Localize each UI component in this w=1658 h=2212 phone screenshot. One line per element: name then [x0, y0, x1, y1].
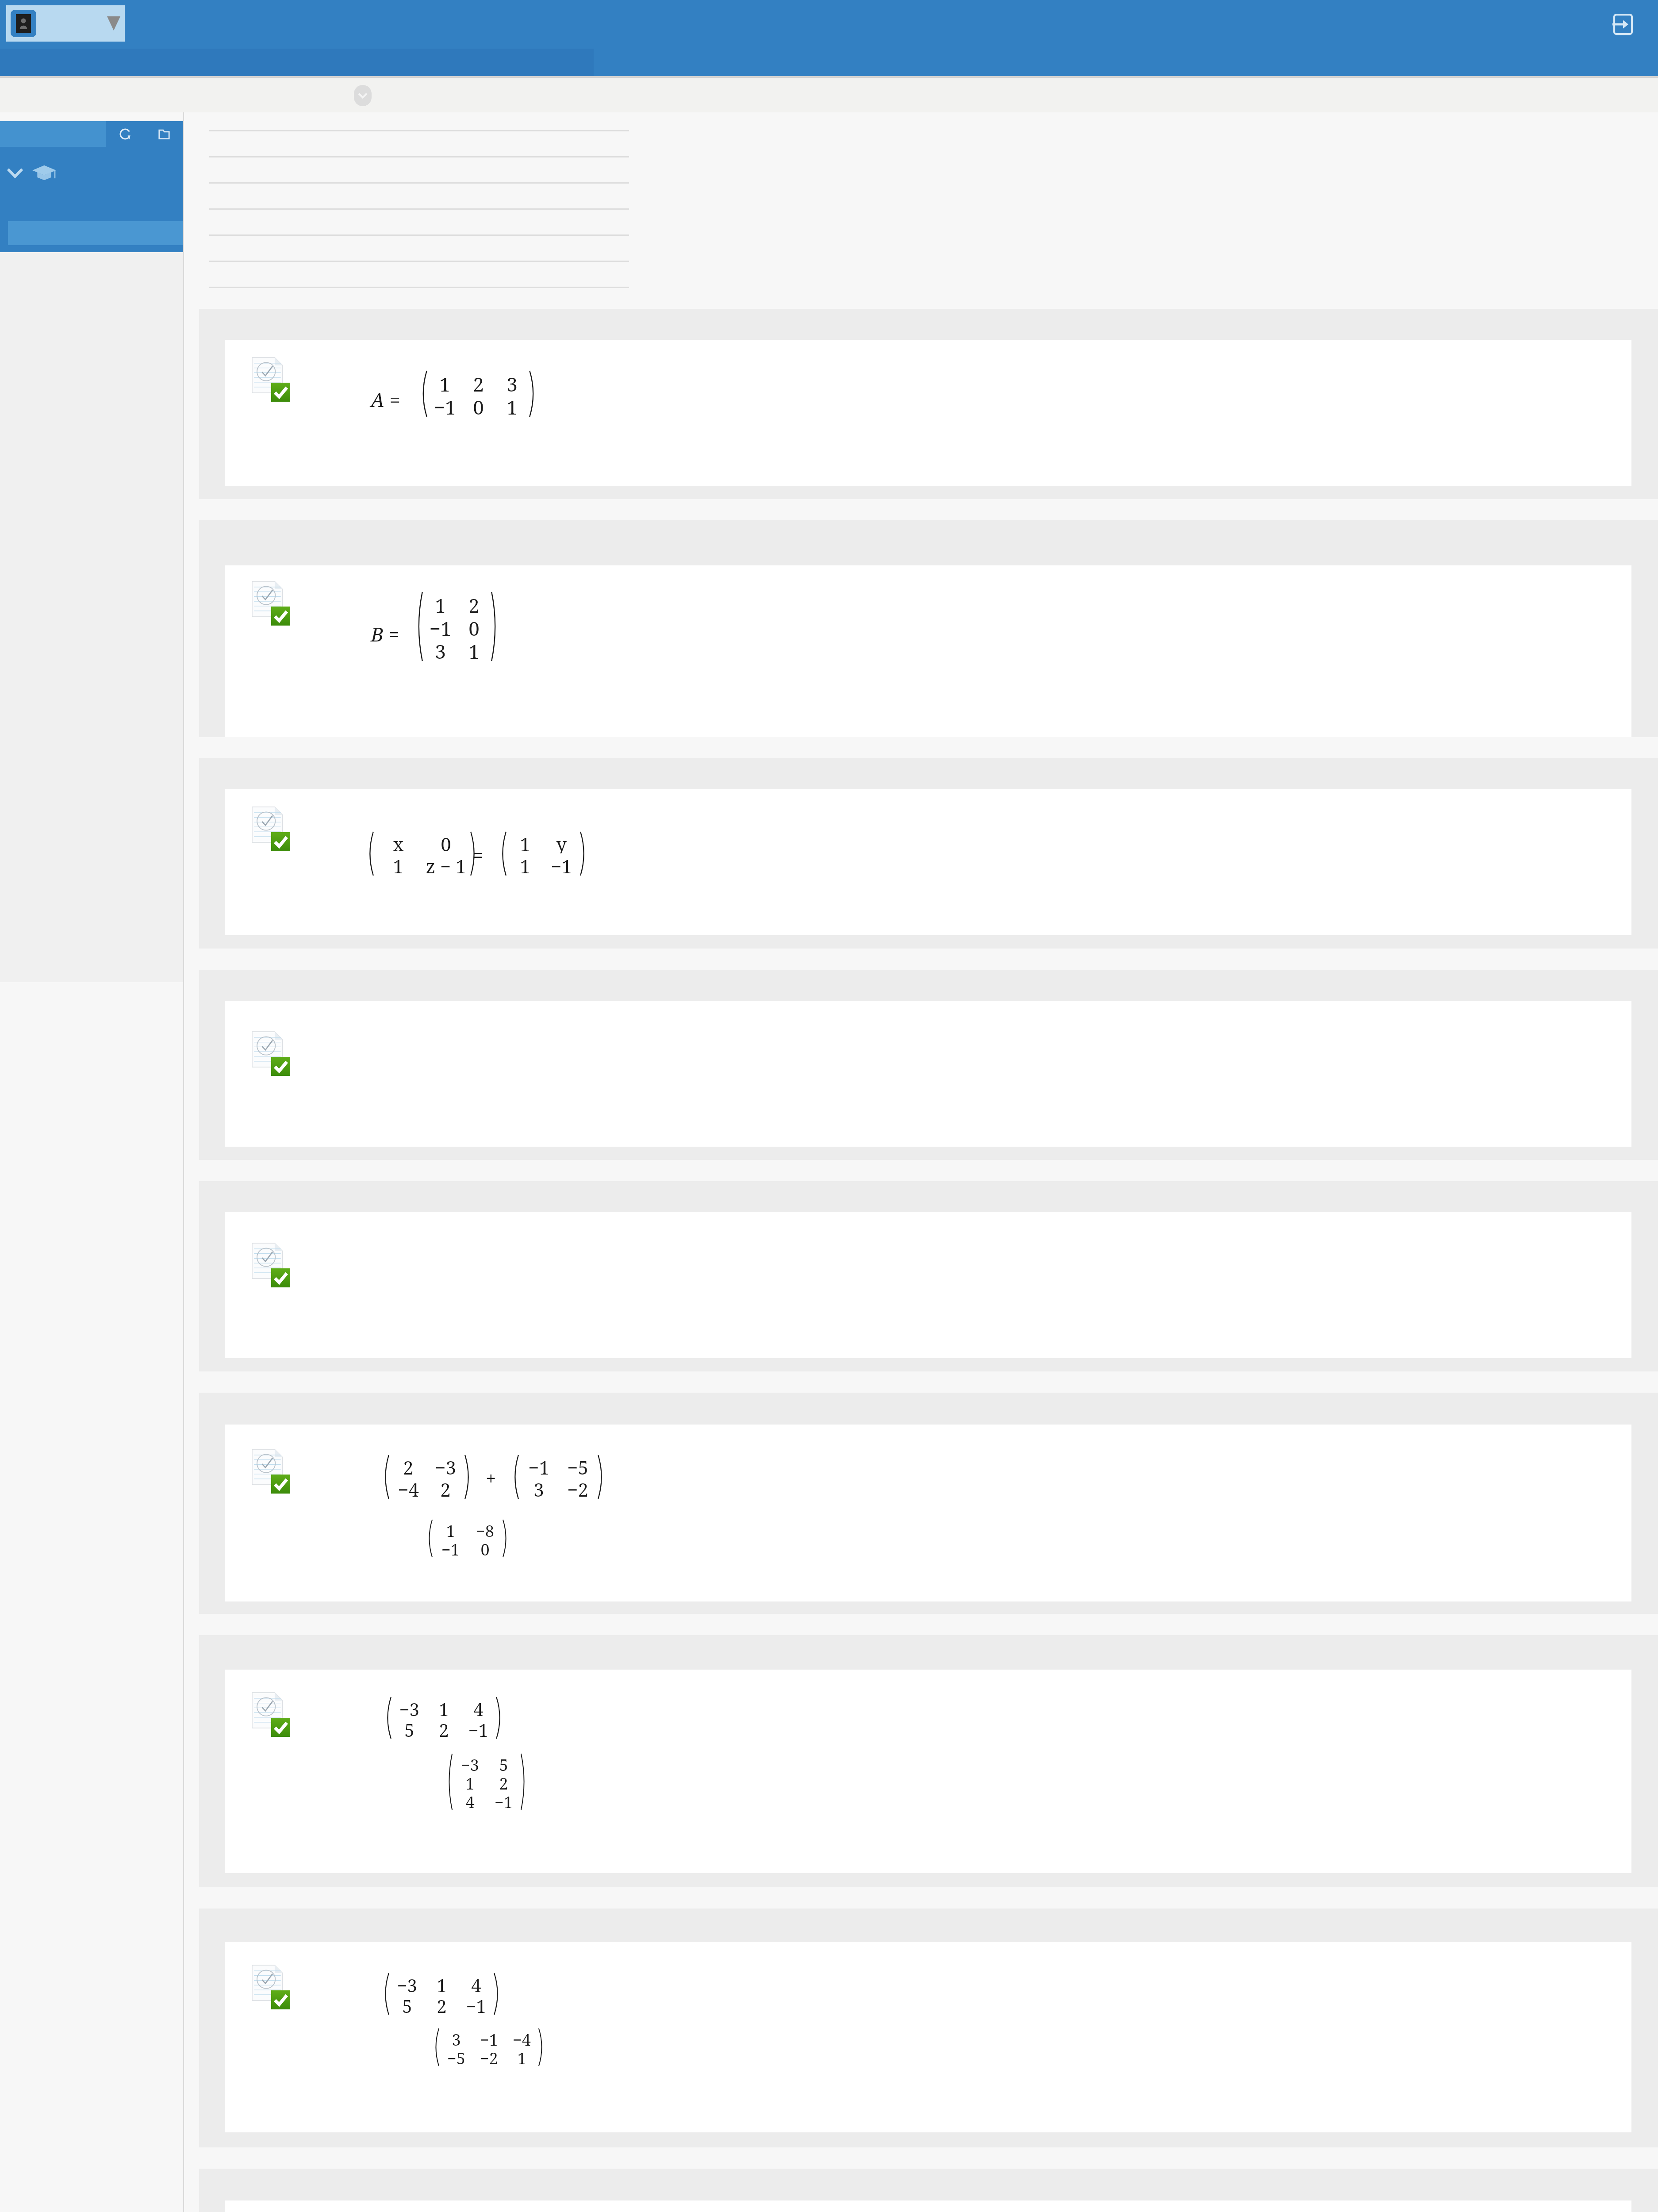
button[interactable]: Completed exercise	[225, 1001, 1631, 1147]
other: Completed exercise	[252, 357, 290, 402]
button[interactable]: Sign out	[1607, 8, 1639, 41]
button[interactable]: Completed exercise	[225, 2200, 1631, 2212]
staticText: 3	[533, 1477, 544, 1499]
staticText: −5	[567, 1455, 588, 1477]
staticText: −4	[513, 2029, 531, 2047]
staticText: 5	[402, 1994, 412, 2015]
button[interactable]: Completed exercise	[225, 565, 1631, 737]
staticText: 4	[465, 1791, 475, 1810]
staticText: 1	[437, 1973, 447, 1994]
staticText: 0	[480, 1539, 490, 1557]
button[interactable]	[6, 5, 125, 42]
staticText: z − 1	[426, 853, 466, 876]
staticText: −5	[447, 2047, 465, 2066]
staticText: 1	[439, 371, 450, 394]
other: Completed exercise	[252, 1965, 290, 2009]
button[interactable]: Completed exercise	[225, 1425, 1631, 1601]
button[interactable]	[8, 221, 184, 245]
staticText: 2	[437, 1994, 447, 2015]
staticText: −1	[434, 394, 456, 417]
staticText: 2	[403, 1455, 414, 1477]
staticText: 0	[473, 394, 484, 417]
button[interactable]: Open folder	[145, 121, 184, 147]
other: Completed exercise	[252, 1032, 290, 1076]
staticText: 4	[473, 1697, 484, 1718]
staticText: 2	[499, 1773, 508, 1791]
staticText: −1	[468, 1718, 488, 1739]
staticText: 3	[452, 2029, 461, 2047]
staticText: x	[393, 831, 404, 853]
other: Completed exercise	[252, 1449, 290, 1494]
staticText: −2	[567, 1477, 588, 1499]
other: Completed exercise	[252, 1693, 290, 1737]
staticText: 1	[439, 1697, 449, 1718]
staticText: 0	[468, 615, 480, 638]
other: Completed exercise	[252, 581, 290, 626]
staticText: 1	[393, 853, 403, 876]
button[interactable]: Completed exercise	[225, 1212, 1631, 1358]
staticText: 0	[441, 831, 451, 853]
staticText: y	[556, 831, 567, 853]
staticText: −1	[441, 1539, 460, 1557]
staticText: 1	[446, 1520, 455, 1539]
staticText: 2	[440, 1477, 451, 1499]
staticText: 1	[468, 638, 480, 661]
staticText: 4	[471, 1973, 481, 1994]
staticText: −1	[480, 2029, 498, 2047]
staticText: 5	[499, 1754, 508, 1773]
staticText: −2	[480, 2047, 498, 2066]
button[interactable]: Refresh	[106, 121, 145, 147]
other: Completed exercise	[252, 807, 290, 851]
staticText: −3	[461, 1754, 479, 1773]
staticText: 2	[473, 371, 484, 394]
staticText: 1	[520, 853, 530, 876]
staticText: −1	[429, 615, 452, 638]
staticText: −3	[399, 1697, 419, 1718]
staticText: −1	[466, 1994, 486, 2015]
staticText: −1	[495, 1791, 513, 1810]
other: Completed exercise	[252, 1243, 290, 1287]
staticText: 2	[468, 592, 480, 615]
staticText: +	[486, 1465, 496, 1490]
staticText: −8	[476, 1520, 494, 1539]
button[interactable]: Completed exercise	[225, 1670, 1631, 1873]
button[interactable]: Completed exercise	[225, 1942, 1631, 2132]
staticText: 1	[435, 592, 446, 615]
staticText: 2	[439, 1718, 449, 1739]
staticText: −3	[397, 1973, 417, 1994]
staticText: =	[472, 841, 484, 868]
button[interactable]: Completed exercise	[225, 340, 1631, 486]
staticText: −3	[435, 1455, 456, 1477]
staticText: −1	[551, 853, 572, 876]
staticText: −1	[528, 1455, 549, 1477]
staticText: 1	[507, 394, 518, 417]
button[interactable]: Collapse	[354, 85, 372, 106]
staticText: 1	[517, 2047, 526, 2066]
button[interactable]	[0, 157, 184, 188]
staticText: 5	[404, 1718, 414, 1739]
button[interactable]: Completed exercise	[225, 789, 1631, 935]
staticText: 3	[435, 638, 446, 661]
staticText: 3	[507, 371, 518, 394]
staticText: 1	[465, 1773, 475, 1791]
staticText: B =	[371, 621, 399, 647]
staticText: −4	[398, 1477, 419, 1499]
staticText: 1	[520, 831, 530, 853]
staticText: A =	[371, 386, 401, 413]
